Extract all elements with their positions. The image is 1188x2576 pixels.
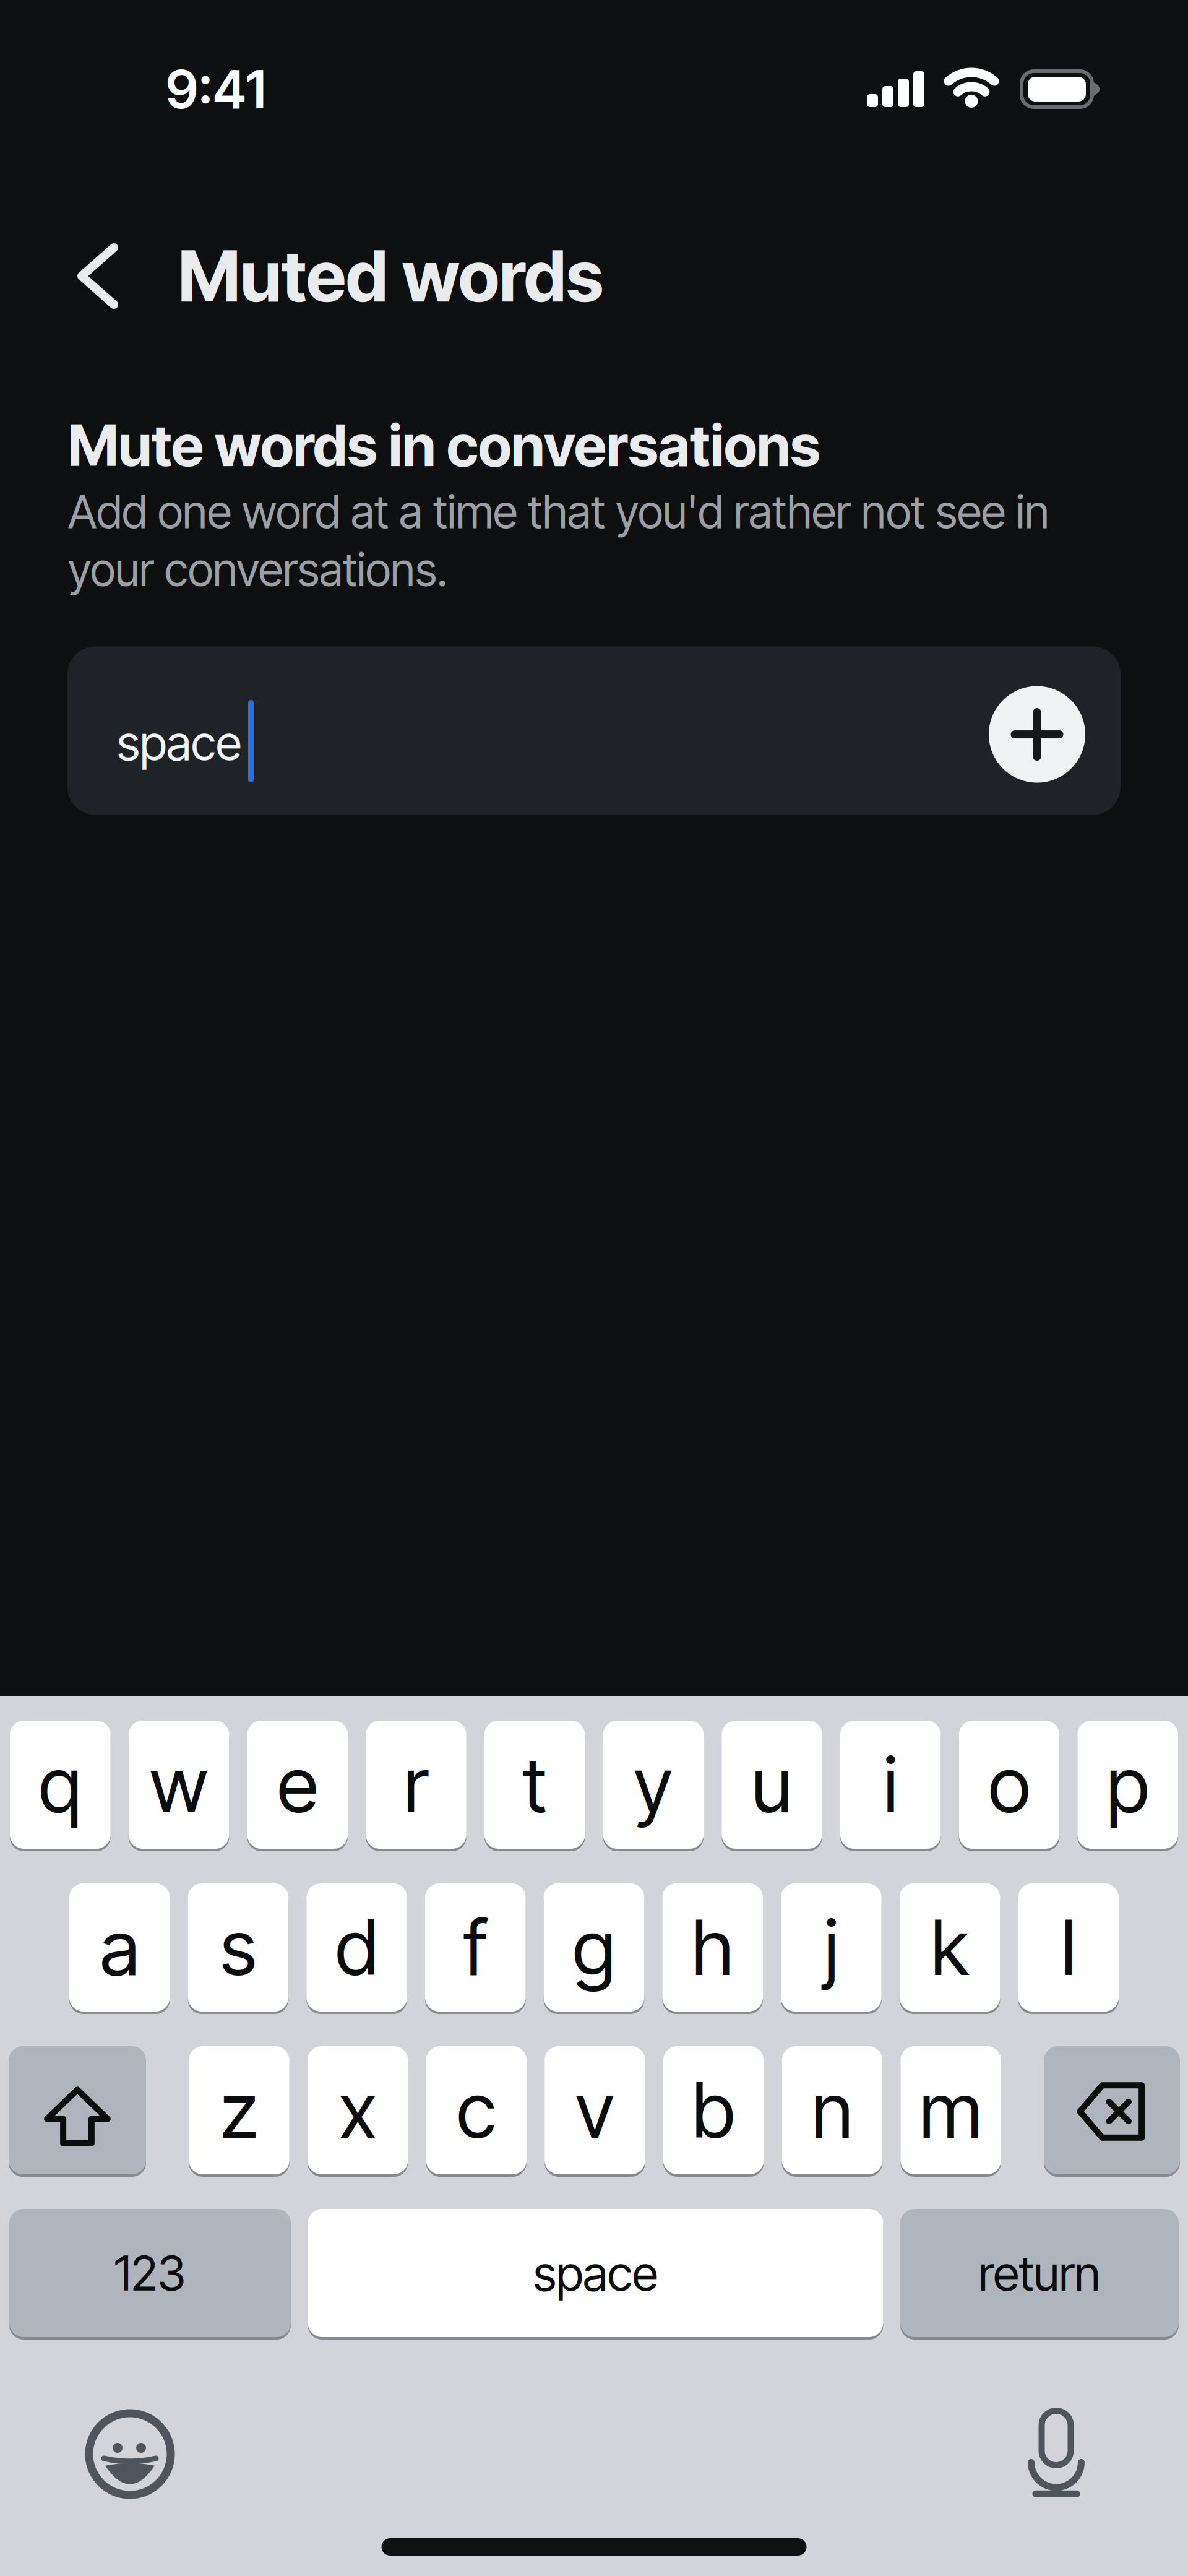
staticText: a xyxy=(100,1903,139,1992)
staticText: j xyxy=(824,1903,838,1992)
button[interactable]: s xyxy=(188,1883,288,2012)
staticText: h xyxy=(692,1903,733,1992)
button[interactable]: q xyxy=(10,1721,111,1849)
staticText: b xyxy=(692,2065,735,2155)
staticText: w xyxy=(150,1740,208,1829)
button[interactable]: u xyxy=(722,1721,822,1849)
staticText: 123 xyxy=(114,2245,186,2301)
staticText: space xyxy=(117,714,241,771)
button[interactable]: t xyxy=(484,1721,585,1849)
button[interactable]: Delete xyxy=(1044,2046,1180,2174)
staticText: Mute words in conversations xyxy=(68,412,820,479)
button[interactable]: w xyxy=(129,1721,229,1849)
staticText: f xyxy=(464,1903,487,1992)
staticText: Muted words xyxy=(178,235,603,317)
button[interactable]: x xyxy=(307,2046,408,2174)
button[interactable]: p xyxy=(1077,1721,1178,1849)
button[interactable]: Emoji xyxy=(84,2408,176,2500)
staticText: d xyxy=(335,1903,378,1992)
button[interactable]: m xyxy=(900,2046,1001,2174)
staticText: u xyxy=(751,1740,792,1829)
staticText: x xyxy=(339,2065,376,2155)
staticText: n xyxy=(812,2065,853,2155)
staticText: l xyxy=(1061,1903,1076,1992)
button[interactable]: b xyxy=(663,2046,764,2174)
staticText: g xyxy=(573,1903,615,1992)
staticText: c xyxy=(457,2065,496,2155)
button[interactable]: f xyxy=(425,1883,526,2012)
button[interactable]: k xyxy=(900,1883,1000,2012)
staticText: o xyxy=(988,1740,1030,1829)
staticText: 9:41 xyxy=(166,58,266,120)
button[interactable]: l xyxy=(1018,1883,1119,2012)
staticText: v xyxy=(575,2065,614,2155)
button[interactable]: return xyxy=(900,2209,1179,2337)
button[interactable]: i xyxy=(840,1721,941,1849)
button[interactable]: c xyxy=(426,2046,527,2174)
staticText: q xyxy=(39,1740,82,1829)
button[interactable]: Back xyxy=(82,248,114,305)
button[interactable]: h xyxy=(662,1883,763,2012)
staticText: e xyxy=(277,1740,318,1829)
button[interactable]: a xyxy=(69,1883,170,2012)
staticText: i xyxy=(883,1740,898,1829)
button[interactable]: v xyxy=(545,2046,645,2174)
staticText: k xyxy=(931,1903,969,1992)
button[interactable]: Shift xyxy=(9,2046,146,2174)
button[interactable]: Dictate xyxy=(1019,2408,1093,2500)
staticText: space xyxy=(533,2245,658,2301)
button[interactable]: Add xyxy=(989,682,1085,779)
button[interactable]: 123 xyxy=(9,2209,291,2337)
staticText: m xyxy=(920,2065,982,2155)
staticText: t xyxy=(523,1740,547,1829)
button[interactable]: n xyxy=(782,2046,882,2174)
staticText: return xyxy=(979,2245,1100,2301)
button[interactable]: o xyxy=(959,1721,1059,1849)
staticText: s xyxy=(220,1903,256,1992)
button[interactable]: y xyxy=(603,1721,704,1849)
button[interactable]: j xyxy=(781,1883,882,2012)
button[interactable]: space xyxy=(308,2209,883,2337)
staticText: r xyxy=(404,1740,428,1829)
staticText: y xyxy=(634,1740,673,1829)
button[interactable]: z xyxy=(189,2046,289,2174)
staticText: z xyxy=(220,2065,258,2155)
staticText: p xyxy=(1106,1740,1149,1829)
staticText: Add one word at a time that you'd rather… xyxy=(68,485,1049,596)
button[interactable]: e xyxy=(247,1721,348,1849)
button[interactable]: r xyxy=(366,1721,466,1849)
button[interactable]: d xyxy=(306,1883,407,2012)
button[interactable]: g xyxy=(544,1883,644,2012)
